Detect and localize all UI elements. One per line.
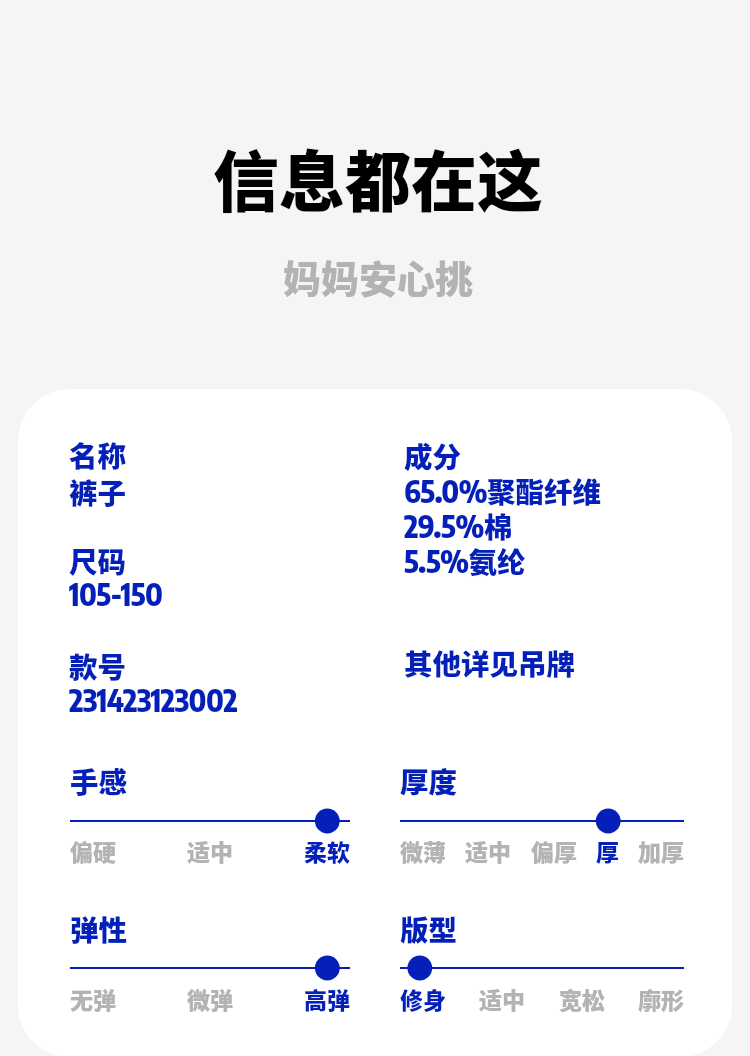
button[interactable]: 适中 bbox=[465, 834, 511, 867]
button[interactable]: 微薄 bbox=[400, 834, 446, 867]
staticText: 5.5%氨纶 bbox=[404, 540, 526, 581]
button[interactable]: 厚 bbox=[596, 834, 619, 867]
button[interactable]: 无弹 bbox=[70, 982, 116, 1015]
staticText: 231423123002 bbox=[69, 681, 238, 718]
staticText: 厚 bbox=[596, 834, 619, 867]
staticText: 105-150 bbox=[69, 575, 163, 612]
staticText: 廓形 bbox=[638, 982, 684, 1015]
staticText: 裤子 bbox=[69, 471, 127, 512]
staticText: 名称 bbox=[69, 434, 127, 475]
staticText: 适中 bbox=[479, 982, 525, 1015]
staticText: 微薄 bbox=[400, 834, 446, 867]
button[interactable]: 微弹 bbox=[187, 982, 233, 1015]
staticText: 高弹 bbox=[304, 982, 350, 1015]
button[interactable]: 偏厚 bbox=[531, 834, 577, 867]
button[interactable]: 版型 bbox=[386, 954, 698, 982]
button[interactable]: 加厚 bbox=[638, 834, 684, 867]
staticText: 尺码 bbox=[69, 540, 127, 581]
staticText: 弹性 bbox=[70, 908, 128, 949]
staticText: 信息都在这 bbox=[3, 129, 750, 225]
staticText: 加厚 bbox=[638, 834, 684, 867]
staticText: 成分 bbox=[404, 435, 462, 476]
button[interactable]: 弹性 bbox=[56, 954, 364, 982]
staticText: 偏硬 bbox=[70, 834, 116, 867]
staticText: 65.0%聚酯纤维 bbox=[404, 470, 602, 511]
button[interactable]: 适中 bbox=[479, 982, 525, 1015]
staticText: 适中 bbox=[187, 834, 233, 867]
staticText: 29.5%棉 bbox=[404, 505, 513, 546]
staticText: 偏厚 bbox=[531, 834, 577, 867]
staticText: 宽松 bbox=[559, 982, 605, 1015]
staticText: 厚度 bbox=[400, 760, 458, 801]
staticText: 修身 bbox=[400, 982, 446, 1015]
staticText: 其他详见吊牌 bbox=[404, 642, 576, 683]
staticText: 适中 bbox=[465, 834, 511, 867]
button[interactable]: 偏硬 bbox=[70, 834, 116, 867]
staticText: 款号 bbox=[69, 645, 127, 686]
staticText: 手感 bbox=[70, 760, 128, 801]
button[interactable]: 柔软 bbox=[304, 834, 350, 867]
staticText: 版型 bbox=[400, 908, 458, 949]
button[interactable]: 适中 bbox=[187, 834, 233, 867]
button[interactable]: 手感 bbox=[56, 807, 364, 835]
staticText: 柔软 bbox=[304, 834, 350, 867]
staticText: 妈妈安心挑 bbox=[3, 249, 750, 304]
staticText: 无弹 bbox=[70, 982, 116, 1015]
button[interactable]: 廓形 bbox=[638, 982, 684, 1015]
button[interactable]: 高弹 bbox=[304, 982, 350, 1015]
button[interactable]: 厚度 bbox=[386, 807, 698, 835]
button[interactable]: 宽松 bbox=[559, 982, 605, 1015]
staticText: 微弹 bbox=[187, 982, 233, 1015]
button[interactable]: 修身 bbox=[400, 982, 446, 1015]
